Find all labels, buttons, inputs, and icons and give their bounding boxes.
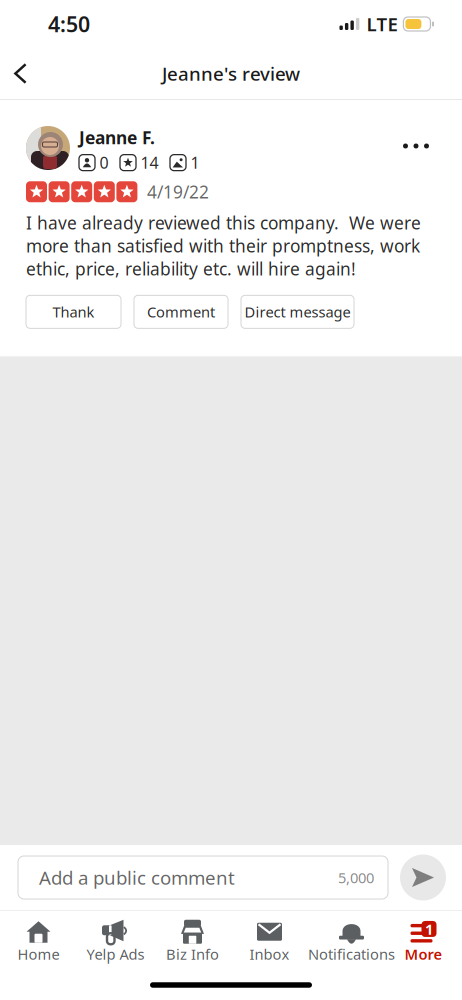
staticText: Add a public comment [39, 865, 235, 890]
staticText: 14 [140, 152, 158, 173]
staticText: LTE [366, 12, 397, 36]
button[interactable]: More options [390, 126, 442, 166]
staticText: Jeanne F. [79, 126, 155, 149]
staticText: 4:50 [48, 10, 90, 38]
staticText: Thank [52, 302, 94, 322]
staticText: I have already reviewed this company. We… [26, 211, 421, 280]
staticText: Jeanne's review [162, 61, 300, 86]
button[interactable]: Send [400, 854, 446, 900]
button[interactable]: Add a public comment [18, 856, 388, 899]
button[interactable]: Inbox [231, 911, 308, 970]
staticText: Inbox [249, 944, 289, 964]
button[interactable]: Notifications [308, 911, 385, 970]
staticText: 1 [190, 152, 199, 173]
button[interactable]: 1 [385, 911, 462, 970]
staticText: Notifications [308, 944, 395, 964]
staticText: 0 [99, 152, 108, 173]
button[interactable]: Biz Info [154, 911, 231, 970]
staticText: Comment [147, 302, 215, 322]
button[interactable]: Yelp Ads [77, 911, 154, 970]
staticText: 1 [425, 919, 433, 939]
button[interactable]: Thank [26, 295, 121, 328]
staticText: 5,000 [338, 868, 374, 887]
button[interactable]: Back [0, 48, 45, 98]
button[interactable]: Direct message [241, 295, 354, 328]
button[interactable]: Home [0, 911, 77, 970]
staticText: Biz Info [166, 944, 219, 964]
staticText: 4/19/22 [147, 180, 209, 203]
staticText: Home [17, 944, 59, 964]
staticText: Direct message [244, 302, 350, 322]
staticText: More [404, 944, 442, 964]
staticText: Yelp Ads [86, 944, 144, 964]
button[interactable]: Comment [134, 295, 228, 328]
